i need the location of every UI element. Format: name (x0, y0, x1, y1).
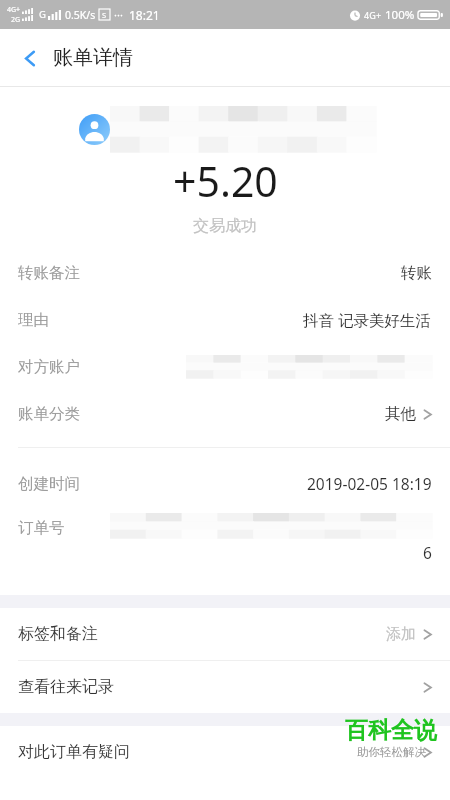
staticText: 交易成功 (193, 216, 257, 236)
staticText: 2G (11, 15, 21, 25)
staticText: 订单号 (18, 518, 65, 538)
staticText: 18:21 (129, 7, 160, 23)
staticText: G (39, 8, 46, 21)
staticText: 添加 (386, 625, 416, 644)
staticText: 2019-02-05 18:19 (307, 473, 432, 494)
button[interactable]: 返回 (13, 41, 47, 75)
staticText: 其他 (385, 404, 416, 424)
staticText: 查看往来记录 (18, 677, 114, 697)
staticText: 账单详情 (53, 45, 133, 70)
staticText: 百科全说 (345, 716, 437, 745)
staticText: 创建时间 (18, 474, 80, 494)
button[interactable]: 对此订单有疑问 (0, 726, 450, 778)
staticText: 4G+ (7, 5, 21, 15)
staticText: 标签和备注 (18, 624, 98, 644)
staticText: + (376, 9, 382, 21)
staticText: 抖音 记录美好生活 (303, 309, 432, 330)
staticText: 对此订单有疑问 (18, 742, 130, 762)
button[interactable]: 查看往来记录 (0, 661, 450, 713)
staticText: 转账 (401, 263, 432, 283)
staticText: 理由 (18, 310, 49, 330)
button[interactable]: 标签和备注 (0, 608, 450, 660)
staticText: 6 (423, 542, 432, 563)
staticText: 100% (385, 7, 415, 23)
staticText: +5.20 (173, 153, 278, 209)
staticText: 对方账户 (18, 357, 80, 377)
staticText: 账单分类 (18, 404, 80, 424)
staticText: S (102, 10, 107, 20)
staticText: 转账备注 (18, 263, 80, 283)
staticText: 4G (364, 9, 376, 21)
staticText: 助你轻松解决 (357, 745, 426, 759)
staticText: ··· (114, 7, 123, 22)
staticText: 0.5K/s (65, 8, 96, 22)
